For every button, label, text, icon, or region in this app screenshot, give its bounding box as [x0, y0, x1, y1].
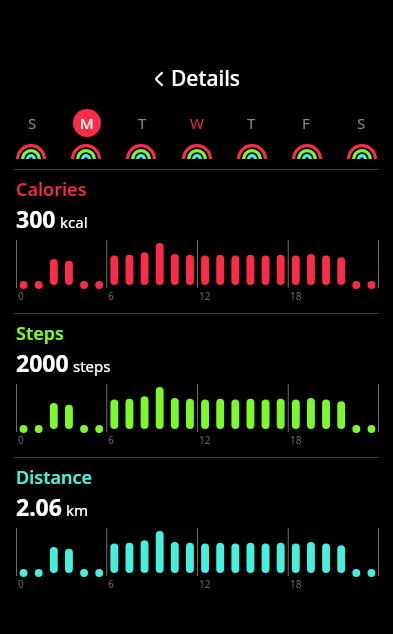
staticText: 0	[18, 433, 24, 447]
staticText: 2.06	[16, 491, 62, 522]
button[interactable]: T	[128, 109, 156, 137]
button[interactable]	[347, 142, 377, 159]
button[interactable]	[292, 142, 322, 159]
button[interactable]: Steps	[0, 314, 393, 457]
staticText: km	[66, 500, 89, 520]
staticText: 18	[290, 289, 302, 303]
button[interactable]: S	[18, 109, 46, 137]
button[interactable]	[126, 142, 156, 159]
staticText: kcal	[60, 212, 88, 232]
staticText: 0	[18, 577, 24, 591]
staticText: 18	[290, 433, 302, 447]
button[interactable]	[237, 142, 267, 159]
staticText: 12	[199, 433, 211, 447]
button[interactable]: F	[292, 109, 320, 137]
staticText: 6	[108, 433, 114, 447]
staticText: steps	[73, 356, 111, 376]
staticText: T	[138, 113, 147, 133]
staticText: S	[28, 113, 37, 133]
staticText: F	[302, 113, 310, 133]
staticText: Distance	[16, 465, 93, 490]
staticText: T	[247, 113, 256, 133]
staticText: 12	[199, 577, 211, 591]
button[interactable]: T	[237, 109, 265, 137]
staticText: 12	[199, 289, 211, 303]
button[interactable]: W	[183, 109, 211, 137]
staticText: 0	[18, 289, 24, 303]
staticText: Details	[171, 64, 241, 93]
button[interactable]: Distance	[0, 458, 393, 601]
button[interactable]	[71, 142, 101, 159]
button[interactable]: M	[73, 109, 101, 137]
other: Back	[153, 70, 165, 88]
staticText: Calories	[16, 177, 87, 202]
staticText: W	[190, 113, 204, 133]
button[interactable]: S	[347, 109, 375, 137]
button[interactable]	[182, 142, 212, 159]
staticText: 300	[16, 203, 56, 234]
staticText: Steps	[16, 321, 64, 346]
staticText: M	[80, 113, 94, 133]
button[interactable]	[16, 142, 46, 159]
staticText: 6	[108, 289, 114, 303]
staticText: S	[357, 113, 366, 133]
staticText: 6	[108, 577, 114, 591]
staticText: 18	[290, 577, 302, 591]
button[interactable]: Calories	[0, 170, 393, 313]
staticText: 2000	[16, 347, 69, 378]
button[interactable]: Back	[0, 60, 393, 97]
